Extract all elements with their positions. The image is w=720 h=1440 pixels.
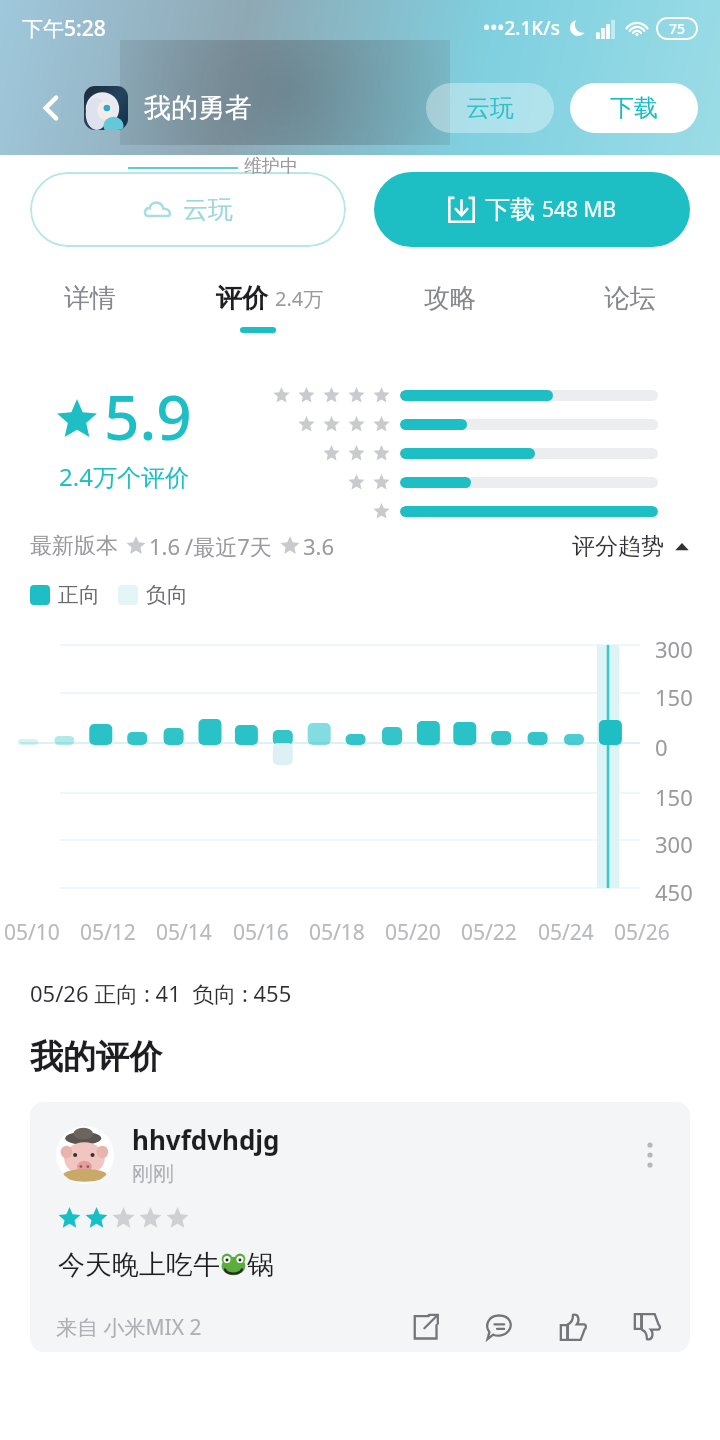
staticText: 最新版本	[30, 532, 118, 560]
staticText: 下载	[610, 93, 658, 123]
staticText: 详情	[64, 282, 116, 315]
staticText: 05/14	[156, 918, 212, 947]
staticText: 150	[655, 782, 693, 812]
staticText: hhvfdvhdjg	[132, 1122, 280, 1157]
button[interactable]: 论坛	[540, 270, 720, 327]
button[interactable]: 详情	[0, 270, 180, 327]
staticText: 云玩	[466, 93, 514, 123]
button[interactable]: hhvfdvhdjg	[30, 1102, 690, 1352]
staticText: 0	[655, 732, 668, 762]
staticText: 评分趋势	[572, 532, 664, 561]
button[interactable]: Back	[30, 86, 74, 130]
button[interactable]: Comment	[478, 1306, 520, 1348]
staticText: 300	[655, 634, 693, 664]
button[interactable]: Dislike	[626, 1306, 668, 1348]
button[interactable]: 评价	[180, 270, 360, 333]
button[interactable]: 云玩	[426, 83, 554, 133]
staticText: 5.9	[104, 374, 192, 458]
staticText: 下载	[485, 194, 535, 225]
staticText: 来自 小米MIX 2	[56, 1313, 202, 1342]
staticText: 云玩	[183, 194, 233, 225]
staticText: 05/18	[309, 918, 365, 947]
button[interactable]: Share	[404, 1306, 446, 1348]
staticText: 1.6	[149, 531, 181, 561]
staticText: 维护中	[244, 155, 298, 178]
button[interactable]: More options	[632, 1137, 668, 1173]
staticText: 05/26 正向 : 41 负向 : 455	[30, 978, 292, 1008]
staticText: 300	[655, 829, 693, 859]
staticText: 评价	[216, 282, 268, 315]
staticText: 05/16	[233, 918, 289, 947]
staticText: 05/20	[385, 918, 441, 947]
staticText: 05/24	[538, 918, 594, 947]
button[interactable]: 下载	[570, 83, 698, 133]
staticText: 05/26	[614, 918, 670, 947]
staticText: 150	[655, 682, 693, 712]
staticText: •••2.1K/s	[483, 15, 560, 41]
staticText: 正向	[58, 582, 100, 608]
staticText: 刚刚	[132, 1161, 174, 1187]
staticText: /最近7天	[185, 531, 272, 561]
staticText: 05/22	[461, 918, 517, 947]
staticText: 2.4万	[275, 285, 324, 312]
staticText: 我的勇者	[144, 91, 252, 125]
staticText: 攻略	[424, 282, 476, 315]
staticText: 负向	[146, 582, 188, 608]
staticText: 2.4万个评价	[59, 460, 189, 493]
staticText: 今天晚上吃牛	[58, 1248, 220, 1282]
staticText: 3.6	[303, 531, 335, 561]
button[interactable]: Like	[552, 1306, 594, 1348]
staticText: 05/10	[4, 918, 60, 947]
button[interactable]: 评分趋势	[572, 532, 690, 561]
staticText: 锅	[247, 1248, 274, 1282]
staticText: 75	[669, 19, 686, 38]
button[interactable]: 攻略	[360, 270, 540, 327]
staticText: 我的评价	[30, 1036, 162, 1078]
staticText: 05/12	[80, 918, 136, 947]
button[interactable]: 下载	[374, 172, 690, 247]
button[interactable]: 云玩	[30, 172, 346, 247]
staticText: 548 MB	[542, 195, 617, 224]
staticText: 下午5:28	[22, 14, 106, 43]
staticText: 论坛	[604, 282, 656, 315]
staticText: 450	[655, 877, 693, 907]
